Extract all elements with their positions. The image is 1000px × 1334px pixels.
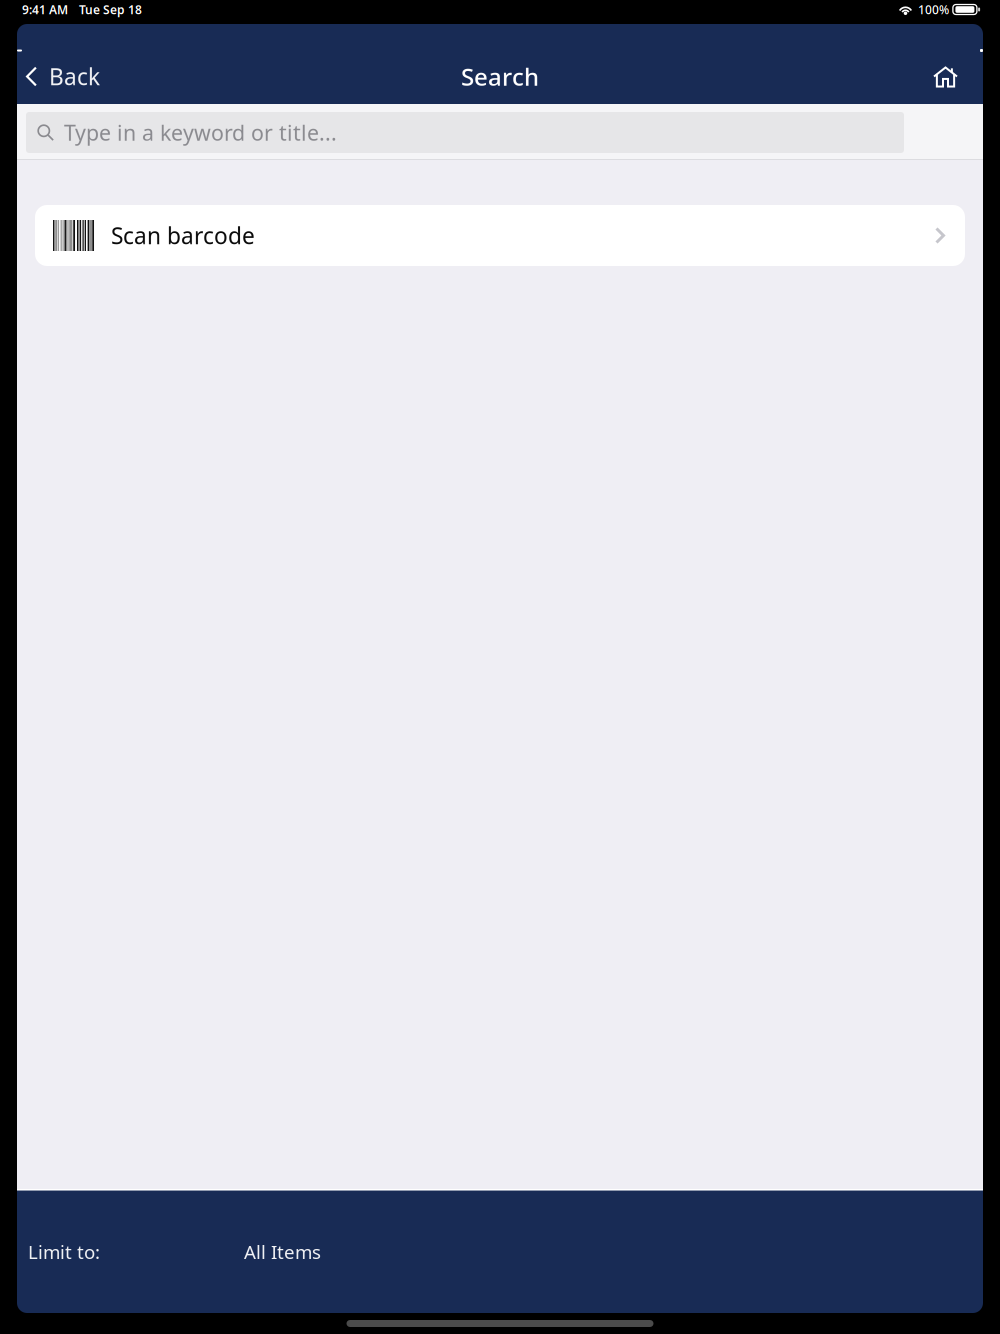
button[interactable]: Type in a keyword or title...: [26, 112, 904, 153]
staticText: 9:41 AM: [22, 1, 68, 17]
staticText: 100%: [918, 1, 949, 17]
staticText: Back: [49, 61, 100, 91]
staticText: Tue Sep 18: [79, 1, 142, 17]
staticText: Type in a keyword or title...: [64, 118, 337, 147]
button[interactable]: Home: [919, 56, 983, 96]
staticText: All Items: [244, 1239, 321, 1264]
button[interactable]: Scan barcode: [35, 205, 965, 266]
staticText: Limit to:: [28, 1239, 100, 1264]
button[interactable]: Back: [17, 52, 114, 100]
button[interactable]: Limit to: All Items: [17, 1190, 983, 1313]
staticText: Search: [461, 61, 539, 92]
staticText: Scan barcode: [111, 220, 255, 250]
